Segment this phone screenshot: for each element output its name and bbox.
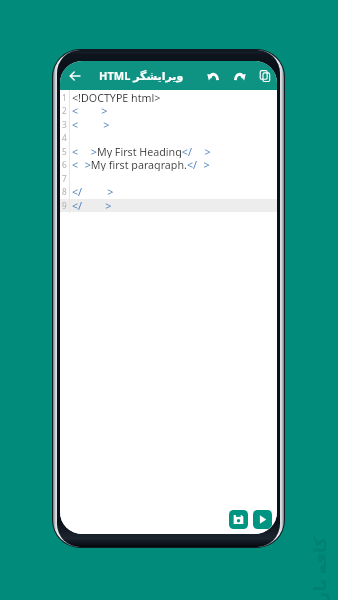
staticText: 5 — [62, 146, 67, 157]
staticText: 6 — [62, 159, 67, 170]
staticText: </body> — [72, 185, 114, 198]
staticText: </html> — [72, 199, 112, 212]
button[interactable]: Undo — [202, 65, 224, 87]
button[interactable]: Save — [229, 510, 248, 529]
staticText: <p>My first paragraph.</p> — [72, 158, 210, 171]
staticText: 2 — [62, 105, 67, 116]
staticText: 8 — [62, 186, 67, 197]
staticText: <html> — [72, 104, 108, 117]
staticText: 4 — [62, 132, 67, 143]
staticText: <h1>My First Heading</h1> — [72, 145, 211, 158]
staticText: <!DOCTYPE html> — [72, 91, 161, 104]
staticText: 1 — [62, 92, 67, 103]
button[interactable]: Run — [253, 510, 272, 529]
button[interactable]: Back — [63, 64, 86, 87]
staticText: HTML ویرایشگر — [99, 68, 184, 83]
staticText: 9 — [62, 200, 67, 211]
staticText: <body> — [72, 118, 110, 131]
staticText: کافه بازار — [308, 536, 331, 600]
staticText: 7 — [62, 173, 67, 184]
button[interactable]: Redo — [228, 65, 250, 87]
staticText: 3 — [62, 119, 67, 130]
button[interactable]: Copy — [254, 65, 276, 87]
